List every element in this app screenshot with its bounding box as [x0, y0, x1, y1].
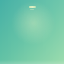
button[interactable]: App logo — [29, 6, 36, 8]
